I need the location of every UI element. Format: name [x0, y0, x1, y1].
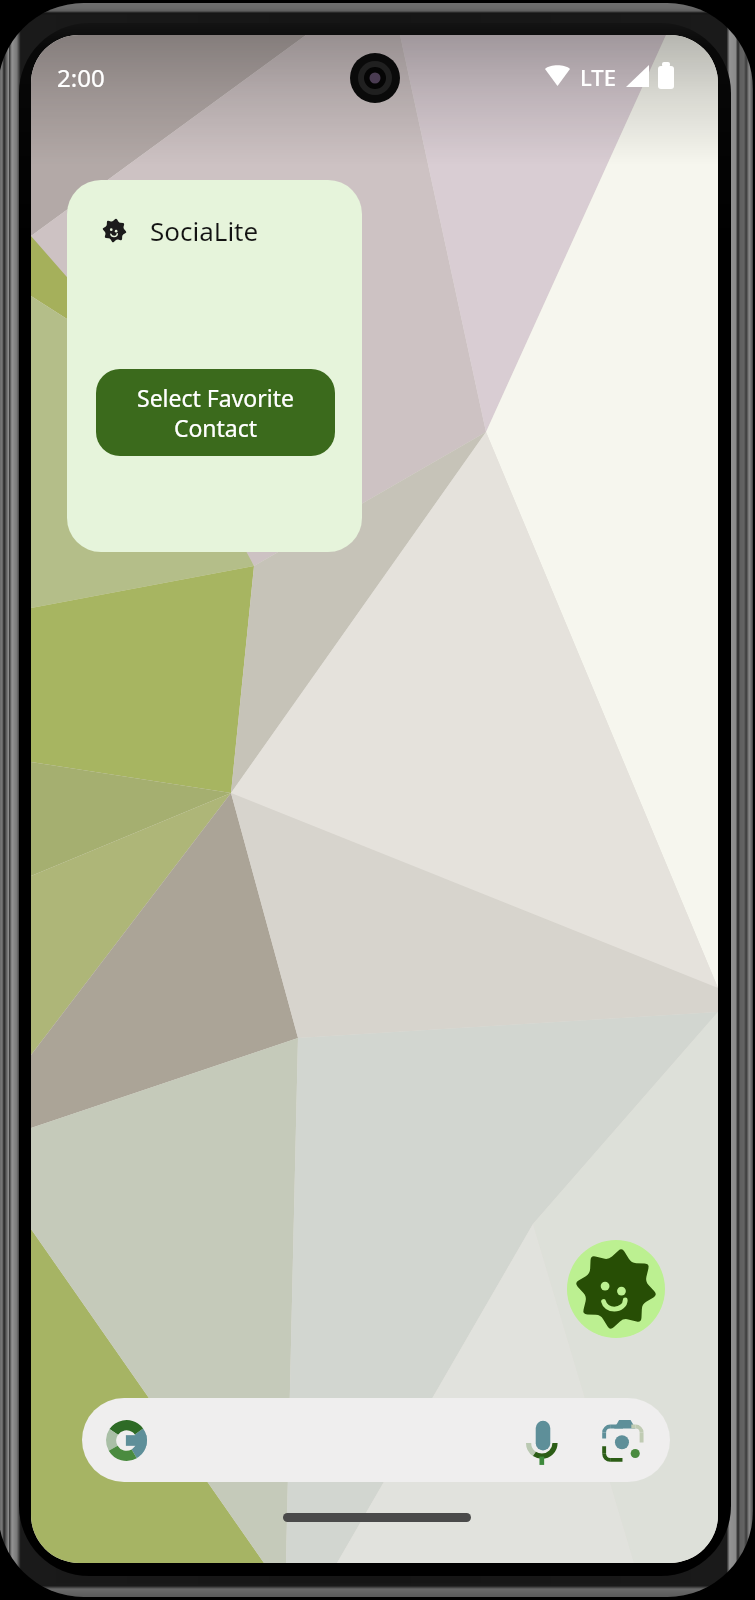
- staticText: Select Favorite Contact: [137, 382, 294, 444]
- staticText: LTE: [580, 62, 616, 92]
- button[interactable]: Select Favorite Contact: [96, 369, 335, 456]
- button[interactable]: SociaLite: [67, 180, 362, 552]
- button[interactable]: Google Lens: [597, 1415, 649, 1467]
- staticText: 2:00: [57, 61, 105, 94]
- button[interactable]: SociaLite: [567, 1240, 665, 1338]
- button[interactable]: Voice search: [517, 1415, 569, 1467]
- button[interactable]: Voice search: [82, 1398, 670, 1482]
- staticText: SociaLite: [150, 213, 259, 248]
